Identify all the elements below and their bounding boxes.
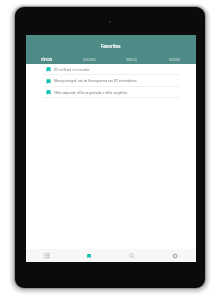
staticText: IST no Brasil e no mundo bbox=[54, 68, 90, 72]
button[interactable]: Manejo integral: uso de fluorogramas nas… bbox=[43, 75, 180, 87]
staticText: TABELAS bbox=[126, 58, 137, 61]
staticText: QUADROS bbox=[83, 58, 96, 61]
staticText: TÓPICOS bbox=[41, 58, 53, 61]
button[interactable]: List bbox=[26, 249, 68, 262]
staticText: Favoritos bbox=[101, 43, 121, 49]
button[interactable]: Favorites bbox=[68, 249, 110, 262]
button[interactable]: Search bbox=[110, 249, 153, 262]
staticText: FIGURAS bbox=[169, 58, 181, 61]
button[interactable]: QUADROS bbox=[68, 56, 110, 64]
button[interactable]: TABELAS bbox=[110, 56, 153, 64]
staticText: Sífilis adquirida, sífilis na gestação e… bbox=[54, 91, 127, 95]
button[interactable]: Sífilis adquirida, sífilis na gestação e… bbox=[43, 87, 180, 98]
button[interactable]: TÓPICOS bbox=[26, 56, 68, 64]
button[interactable]: IST no Brasil e no mundo bbox=[43, 64, 180, 75]
staticText: Manejo integral: uso de fluorogramas nas… bbox=[54, 79, 137, 83]
button[interactable]: FIGURAS bbox=[153, 56, 196, 64]
button[interactable]: Settings bbox=[153, 249, 196, 262]
